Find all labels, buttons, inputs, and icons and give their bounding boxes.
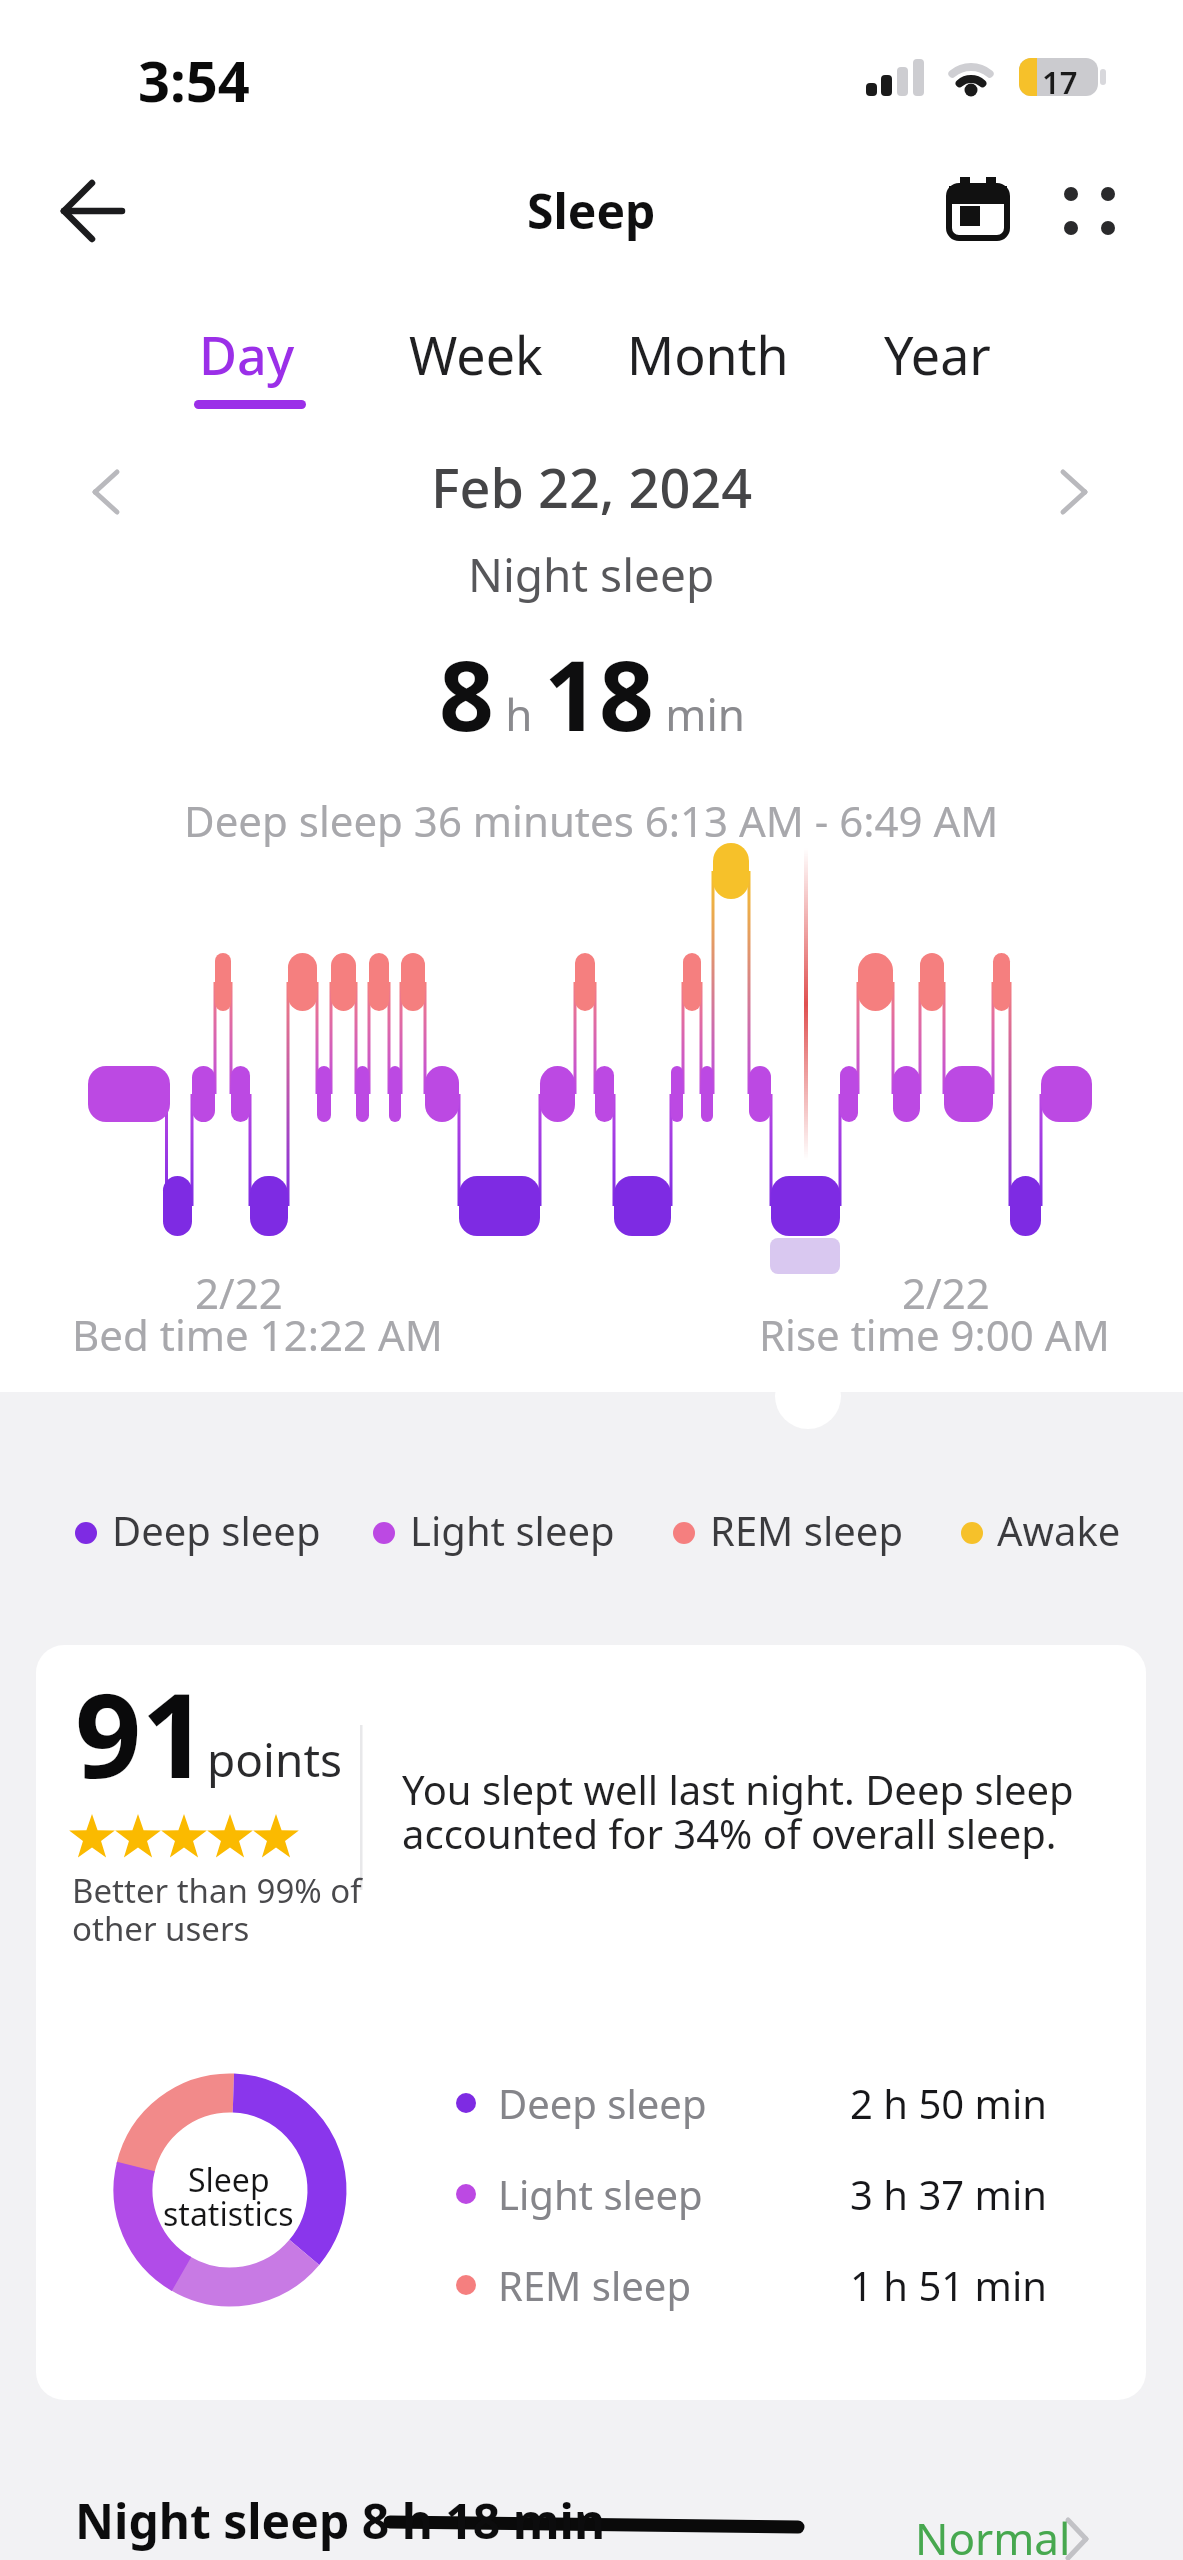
staticText: Deep sleep 36 minutes 6:13 AM - 6:49 AM [184,792,999,849]
staticText: Rise time 9:00 AM [759,1306,1110,1363]
staticText: 8 h 18 min [439,628,745,759]
staticText: Year [884,319,991,390]
staticText: Sleep [188,2158,270,2202]
staticText: Bed time 12:22 AM [72,1306,443,1363]
staticText: points [207,1728,343,1791]
staticText: 3 h 37 min [850,2167,1047,2221]
staticText: Light sleep [410,1503,615,1557]
staticText: 91 [75,1654,208,1812]
staticText: 17 [1042,61,1078,103]
staticText: statistics [163,2192,294,2236]
staticText: Feb 22, 2024 [431,450,753,524]
staticText: You slept well last night. Deep sleep [402,1762,1074,1816]
staticText: Better than 99% of [72,1868,362,1913]
staticText: REM sleep [498,2258,691,2312]
staticText: 3:54 [138,42,250,118]
staticText: Sleep [527,178,656,243]
staticText: other users [72,1906,250,1951]
staticText: Awake [997,1503,1121,1557]
staticText: accounted for 34% of overall sleep. [402,1806,1057,1860]
staticText: Night sleep [468,543,715,606]
staticText: Deep sleep [498,2076,707,2130]
staticText: 2 h 50 min [850,2076,1047,2130]
staticText: Night sleep 8 h 18 min [75,2488,606,2553]
staticText: Day [199,319,295,390]
staticText: Month [627,319,789,390]
staticText: 2/22 [195,1264,283,1321]
staticText: Normal [915,2508,1071,2560]
staticText: 1 h 51 min [850,2258,1047,2312]
staticText: Light sleep [498,2167,703,2221]
staticText: Week [409,319,543,390]
staticText: Deep sleep [112,1503,321,1557]
staticText: 2/22 [902,1264,990,1321]
staticText: REM sleep [710,1503,903,1557]
